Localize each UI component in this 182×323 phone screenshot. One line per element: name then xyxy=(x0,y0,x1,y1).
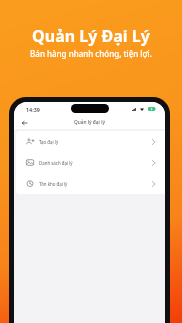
button[interactable]: Tồn kho đại lý xyxy=(16,173,165,194)
staticText: 14:39 xyxy=(26,106,40,113)
staticText: Quản Lý Đại Lý xyxy=(32,25,150,47)
button[interactable]: Tạo đại lý xyxy=(16,131,165,152)
staticText: Tạo đại lý xyxy=(39,139,59,145)
staticText: Tồn kho đại lý xyxy=(39,181,68,187)
staticText: Danh sách đại lý xyxy=(39,160,73,166)
button[interactable]: Danh sách đại lý xyxy=(16,152,165,173)
staticText: Bán hàng nhanh chóng, tiện lợi. xyxy=(30,48,152,59)
staticText: Quản lý đại lý xyxy=(74,119,105,126)
button[interactable]: Back xyxy=(19,117,30,128)
